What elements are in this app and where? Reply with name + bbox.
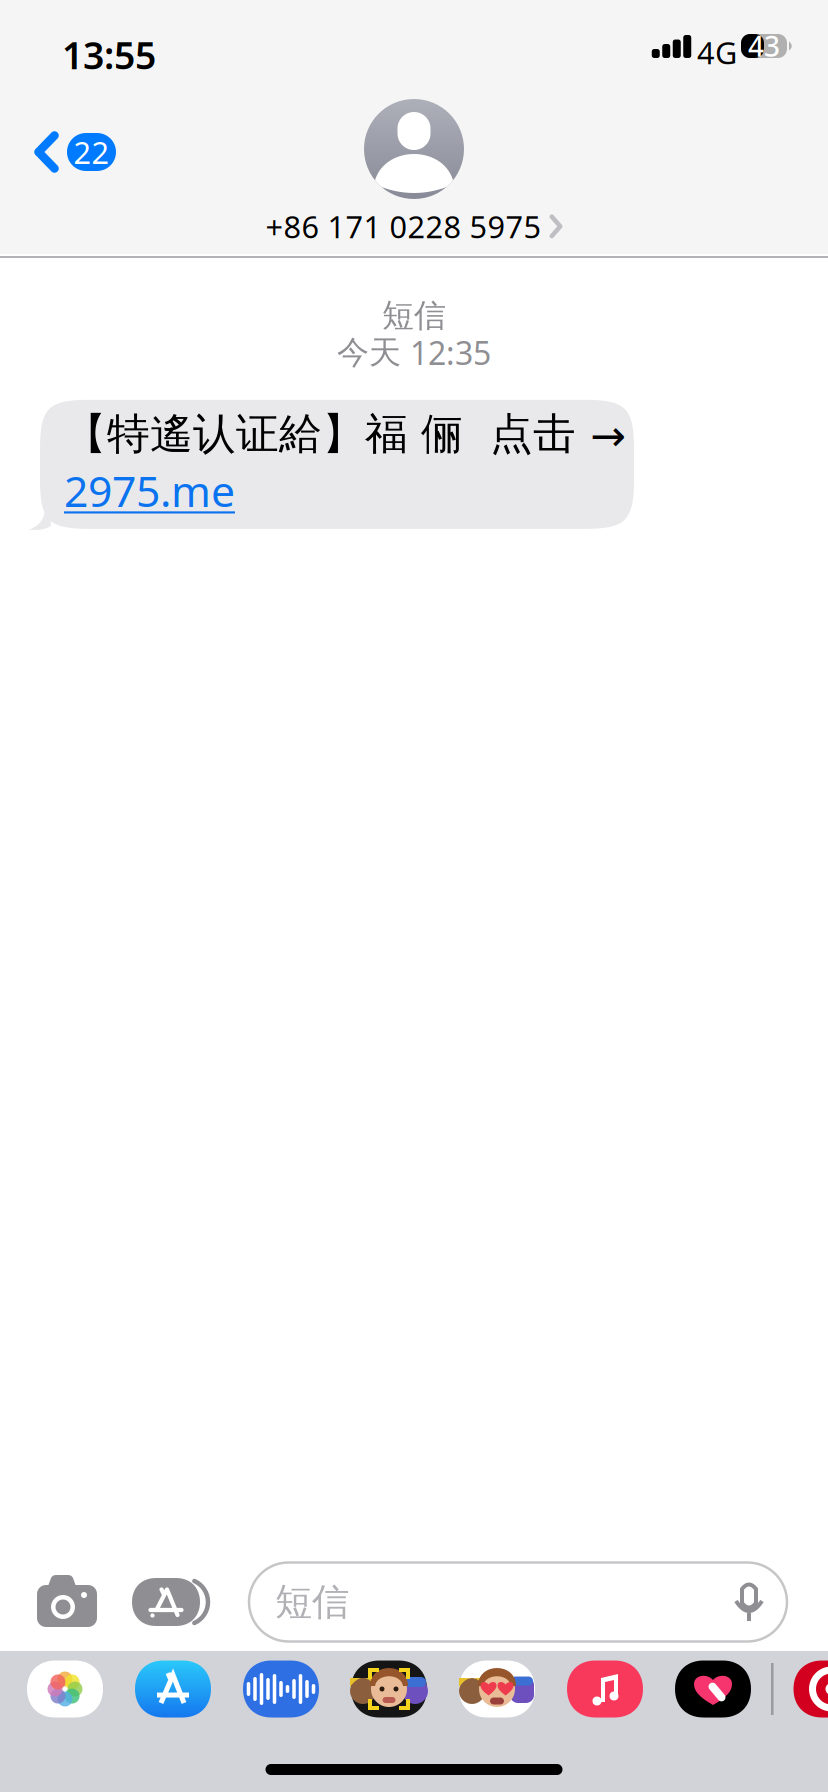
- staticText: 43: [748, 27, 780, 65]
- staticText: 13:55: [62, 30, 156, 80]
- button[interactable]: App Store: [135, 1660, 211, 1717]
- staticText: 短信: [382, 296, 446, 335]
- staticText: +86 171 0228 5975: [265, 206, 541, 247]
- button[interactable]: Music: [567, 1660, 643, 1717]
- button[interactable]: Photos: [27, 1660, 103, 1717]
- staticText: 【特遙认证給】福 俪 点击 →: [64, 408, 626, 460]
- staticText: 22: [73, 132, 109, 172]
- staticText: 4G: [697, 32, 737, 73]
- staticText: 2975.me: [64, 462, 235, 519]
- button[interactable]: 短信: [249, 1562, 787, 1641]
- staticText: 今天: [337, 333, 401, 372]
- button[interactable]: Memoji: [351, 1660, 427, 1717]
- staticText: 短信: [275, 1579, 349, 1625]
- staticText: 12:35: [410, 331, 491, 374]
- button[interactable]: Camera: [0, 1567, 120, 1637]
- button[interactable]: 22: [0, 119, 150, 185]
- button[interactable]: More Apps: [793, 1660, 828, 1717]
- button[interactable]: Memoji Stickers: [459, 1660, 535, 1717]
- button[interactable]: Fitness: [675, 1660, 751, 1717]
- button[interactable]: Apps: [120, 1567, 212, 1637]
- button[interactable]: Audio Messages: [243, 1660, 319, 1717]
